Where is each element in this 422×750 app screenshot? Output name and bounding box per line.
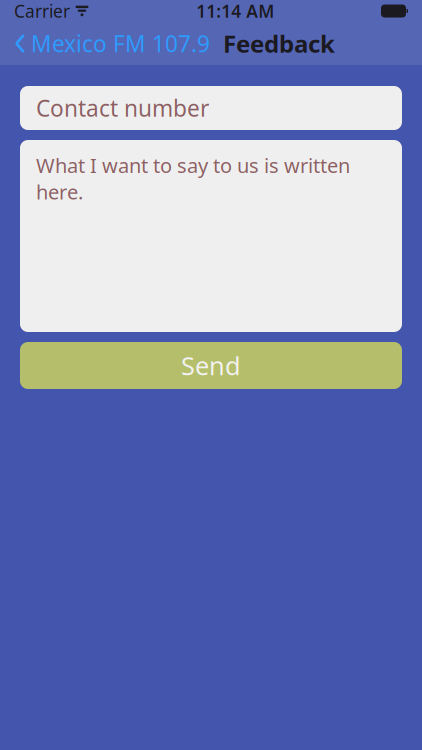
- staticText: Mexico FM 107.9: [31, 28, 210, 58]
- staticText: Contact number: [36, 93, 209, 123]
- staticText: What I want to say to us is written here…: [36, 152, 350, 205]
- button[interactable]: Mexico FM 107.9: [0, 22, 210, 64]
- button[interactable]: What I want to say to us is written here…: [20, 140, 402, 332]
- staticText: Carrier: [14, 0, 70, 22]
- staticText: Feedback: [223, 28, 335, 59]
- staticText: Send: [181, 349, 241, 382]
- button[interactable]: Send: [20, 342, 402, 389]
- staticText: 11:14 AM: [196, 0, 274, 22]
- button[interactable]: Contact number: [20, 86, 402, 130]
